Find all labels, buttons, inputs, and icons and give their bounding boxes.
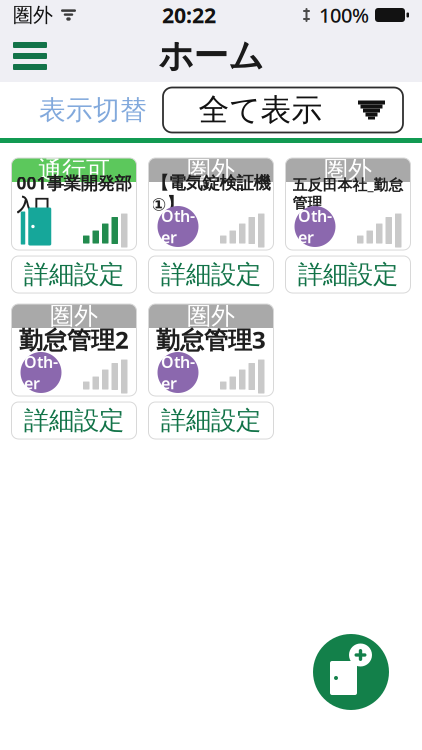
button[interactable]: 詳細設定 [148, 256, 273, 293]
button[interactable]: デバイスを追加 [313, 634, 389, 710]
staticText: Other [161, 205, 195, 248]
button[interactable]: 詳細設定 [285, 256, 410, 293]
button[interactable]: メニュー [0, 30, 61, 82]
staticText: 100% [319, 2, 369, 28]
staticText: Other [298, 205, 332, 248]
staticText: 勤怠管理2 [19, 324, 129, 355]
staticText: 圏外 [187, 301, 235, 331]
button[interactable]: 圏外 [285, 158, 410, 250]
staticText: Other [161, 351, 195, 394]
staticText: ホーム [158, 35, 263, 77]
staticText: 詳細設定 [24, 405, 124, 436]
staticText: 勤怠管理3 [156, 324, 266, 355]
staticText: Other [24, 351, 58, 394]
button[interactable]: 詳細設定 [148, 402, 273, 439]
staticText: 全て表示 [198, 91, 322, 129]
staticText: 001事業開発部入口 [16, 171, 131, 216]
staticText: 通行可 [38, 155, 110, 185]
staticText: 20:22 [162, 1, 216, 29]
button[interactable]: 全て表示 [163, 87, 403, 132]
staticText: 詳細設定 [161, 259, 261, 290]
staticText: 詳細設定 [24, 259, 124, 290]
staticText: 圏外 [324, 155, 372, 185]
staticText: 五反田本社_勤怠管理 [292, 175, 403, 212]
staticText: 詳細設定 [161, 405, 261, 436]
staticText: 表示切替 [39, 94, 147, 126]
staticText: 圏外 [50, 301, 98, 331]
staticText: 圏外 [187, 155, 235, 185]
button[interactable]: 圏外 [11, 304, 136, 396]
button[interactable]: 圏外 [148, 158, 273, 250]
button[interactable]: 表示切替 [31, 84, 155, 136]
staticText: 【電気錠検証機①】 [151, 172, 270, 215]
staticText: 詳細設定 [298, 259, 398, 290]
button[interactable]: 通行可 [11, 158, 136, 250]
button[interactable]: 圏外 [148, 304, 273, 396]
button[interactable]: 詳細設定 [11, 402, 136, 439]
staticText: 圏外 [13, 3, 53, 27]
button[interactable]: 詳細設定 [11, 256, 136, 293]
